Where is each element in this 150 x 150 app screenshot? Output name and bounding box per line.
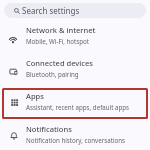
button[interactable]: Connected devices <box>0 59 150 92</box>
button[interactable]: Notifications <box>0 125 150 150</box>
staticText: Apps <box>26 91 44 101</box>
button[interactable]: Apps <box>0 92 150 125</box>
button[interactable]: Network & internet <box>0 26 150 59</box>
staticText: Connected devices <box>26 58 93 68</box>
staticText: Assistant, recent apps, default apps <box>26 103 130 111</box>
staticText: Notification history, conversations <box>26 136 126 144</box>
staticText: Notifications <box>26 124 72 134</box>
staticText: Search settings <box>22 5 80 16</box>
staticText: Mobile, Wi-Fi, hotspot <box>26 37 90 45</box>
staticText: Bluetooth, pairing <box>26 70 79 78</box>
button[interactable]: Search settings <box>4 3 146 18</box>
staticText: Network & internet <box>26 25 96 35</box>
